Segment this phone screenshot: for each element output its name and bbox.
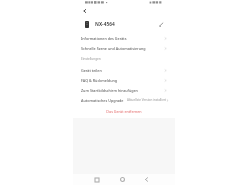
button[interactable]: Informationen des Geräts bbox=[73, 33, 175, 43]
staticText: Informationen des Geräts bbox=[81, 36, 127, 41]
button[interactable]: Automatisches Upgrade bbox=[73, 95, 175, 105]
button[interactable]: Das Gerät entfernen bbox=[73, 105, 175, 118]
button[interactable]: Recent apps bbox=[92, 175, 101, 184]
button[interactable]: FAQ & Rückmeldung bbox=[73, 75, 175, 85]
staticText: Einstellungen bbox=[81, 57, 101, 61]
staticText: Schnelle Szene und Automatisierung bbox=[81, 46, 146, 51]
staticText: Das Gerät entfernen bbox=[106, 109, 142, 114]
staticText: Aktuellste Version installiert bbox=[127, 98, 167, 102]
button[interactable]: Zum Startbildschirm hinzufügen bbox=[73, 85, 175, 95]
staticText: Automatisches Upgrade bbox=[81, 98, 124, 103]
staticText: NX-4564 bbox=[95, 21, 115, 28]
button[interactable]: NX-4564 bbox=[73, 18, 175, 33]
button[interactable]: Schnelle Szene und Automatisierung bbox=[73, 43, 175, 53]
button[interactable]: Gerät teilen bbox=[73, 65, 175, 75]
button[interactable]: Home bbox=[118, 175, 127, 184]
button[interactable]: Back bbox=[81, 7, 89, 15]
button[interactable]: Back bbox=[142, 175, 151, 184]
button[interactable]: Rename device bbox=[158, 21, 165, 28]
staticText: FAQ & Rückmeldung bbox=[81, 78, 118, 83]
staticText: Gerät teilen bbox=[81, 68, 102, 73]
staticText: Zum Startbildschirm hinzufügen bbox=[81, 88, 138, 93]
